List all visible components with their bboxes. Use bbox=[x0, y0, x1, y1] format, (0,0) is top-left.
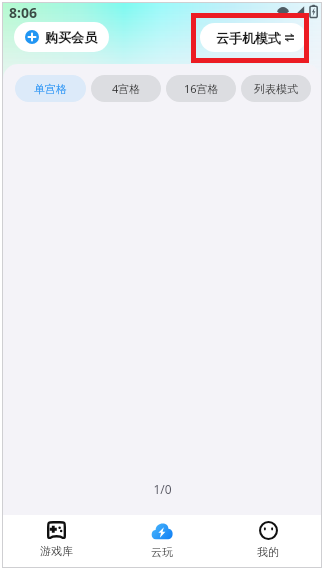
staticText: 购买会员 bbox=[45, 29, 97, 45]
staticText: 云手机模式 bbox=[216, 30, 281, 46]
other: 我的 bbox=[259, 521, 278, 540]
button[interactable]: 云手机模式 bbox=[200, 23, 306, 52]
staticText: 游戏库 bbox=[40, 544, 73, 558]
button[interactable]: 购买会员 bbox=[14, 22, 109, 52]
staticText: 单宫格 bbox=[34, 82, 67, 96]
button[interactable]: 游戏库 bbox=[3, 521, 109, 558]
staticText: 云玩 bbox=[151, 545, 173, 559]
button[interactable]: 云玩 bbox=[109, 521, 215, 559]
button[interactable]: 我的 bbox=[215, 521, 321, 559]
staticText: 8:06 bbox=[9, 3, 37, 22]
staticText: 1/0 bbox=[153, 481, 172, 497]
staticText: 我的 bbox=[257, 545, 279, 559]
staticText: 列表模式 bbox=[254, 82, 298, 96]
staticText: 16宫格 bbox=[184, 81, 219, 96]
other: 游戏库 bbox=[47, 521, 66, 539]
button[interactable]: 4宫格 bbox=[91, 75, 161, 102]
button[interactable]: 16宫格 bbox=[166, 75, 236, 102]
staticText: 4宫格 bbox=[112, 81, 141, 96]
button[interactable]: 列表模式 bbox=[241, 75, 311, 102]
other: 云玩 bbox=[151, 521, 173, 540]
button[interactable]: 单宫格 bbox=[15, 75, 86, 102]
